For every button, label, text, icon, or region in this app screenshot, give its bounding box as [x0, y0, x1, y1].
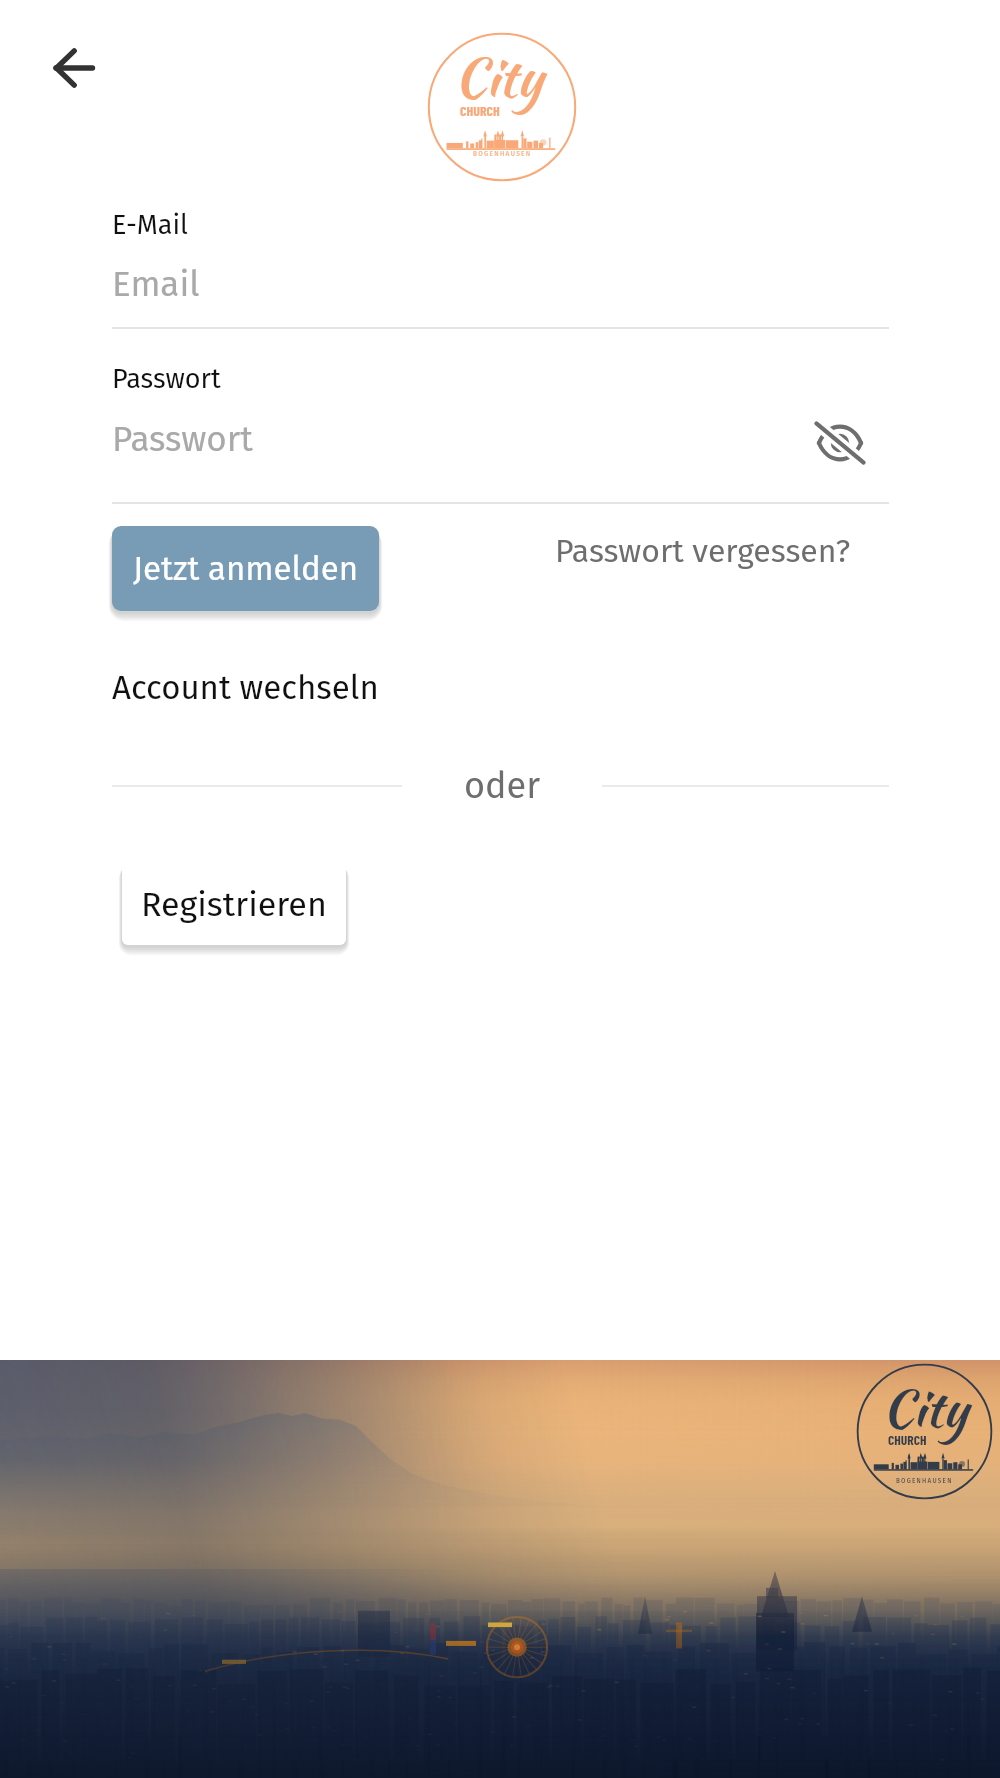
- button[interactable]: Registrieren: [122, 863, 346, 945]
- button[interactable]: Jetzt anmelden: [112, 526, 379, 611]
- staticText: Passwort: [112, 418, 253, 460]
- staticText: City: [454, 39, 543, 116]
- staticText: BOGENHAUSEN: [896, 1477, 953, 1485]
- button[interactable]: Show password: [809, 412, 871, 474]
- staticText: CHURCH: [888, 1431, 927, 1447]
- staticText: Account wechseln: [112, 668, 379, 708]
- staticText: Registrieren: [141, 884, 327, 925]
- button[interactable]: Passwort vergessen?: [555, 532, 851, 570]
- staticText: oder: [464, 764, 541, 807]
- staticText: Passwort vergessen?: [555, 532, 851, 570]
- button[interactable]: Back: [43, 38, 103, 98]
- staticText: CHURCH: [460, 102, 500, 119]
- staticText: City: [882, 1370, 968, 1445]
- staticText: Passwort: [112, 363, 221, 395]
- button[interactable]: Account wechseln: [112, 668, 379, 708]
- staticText: BOGENHAUSEN: [473, 150, 532, 158]
- staticText: Email: [112, 263, 200, 305]
- staticText: Jetzt anmelden: [133, 549, 359, 589]
- staticText: E-Mail: [112, 209, 189, 241]
